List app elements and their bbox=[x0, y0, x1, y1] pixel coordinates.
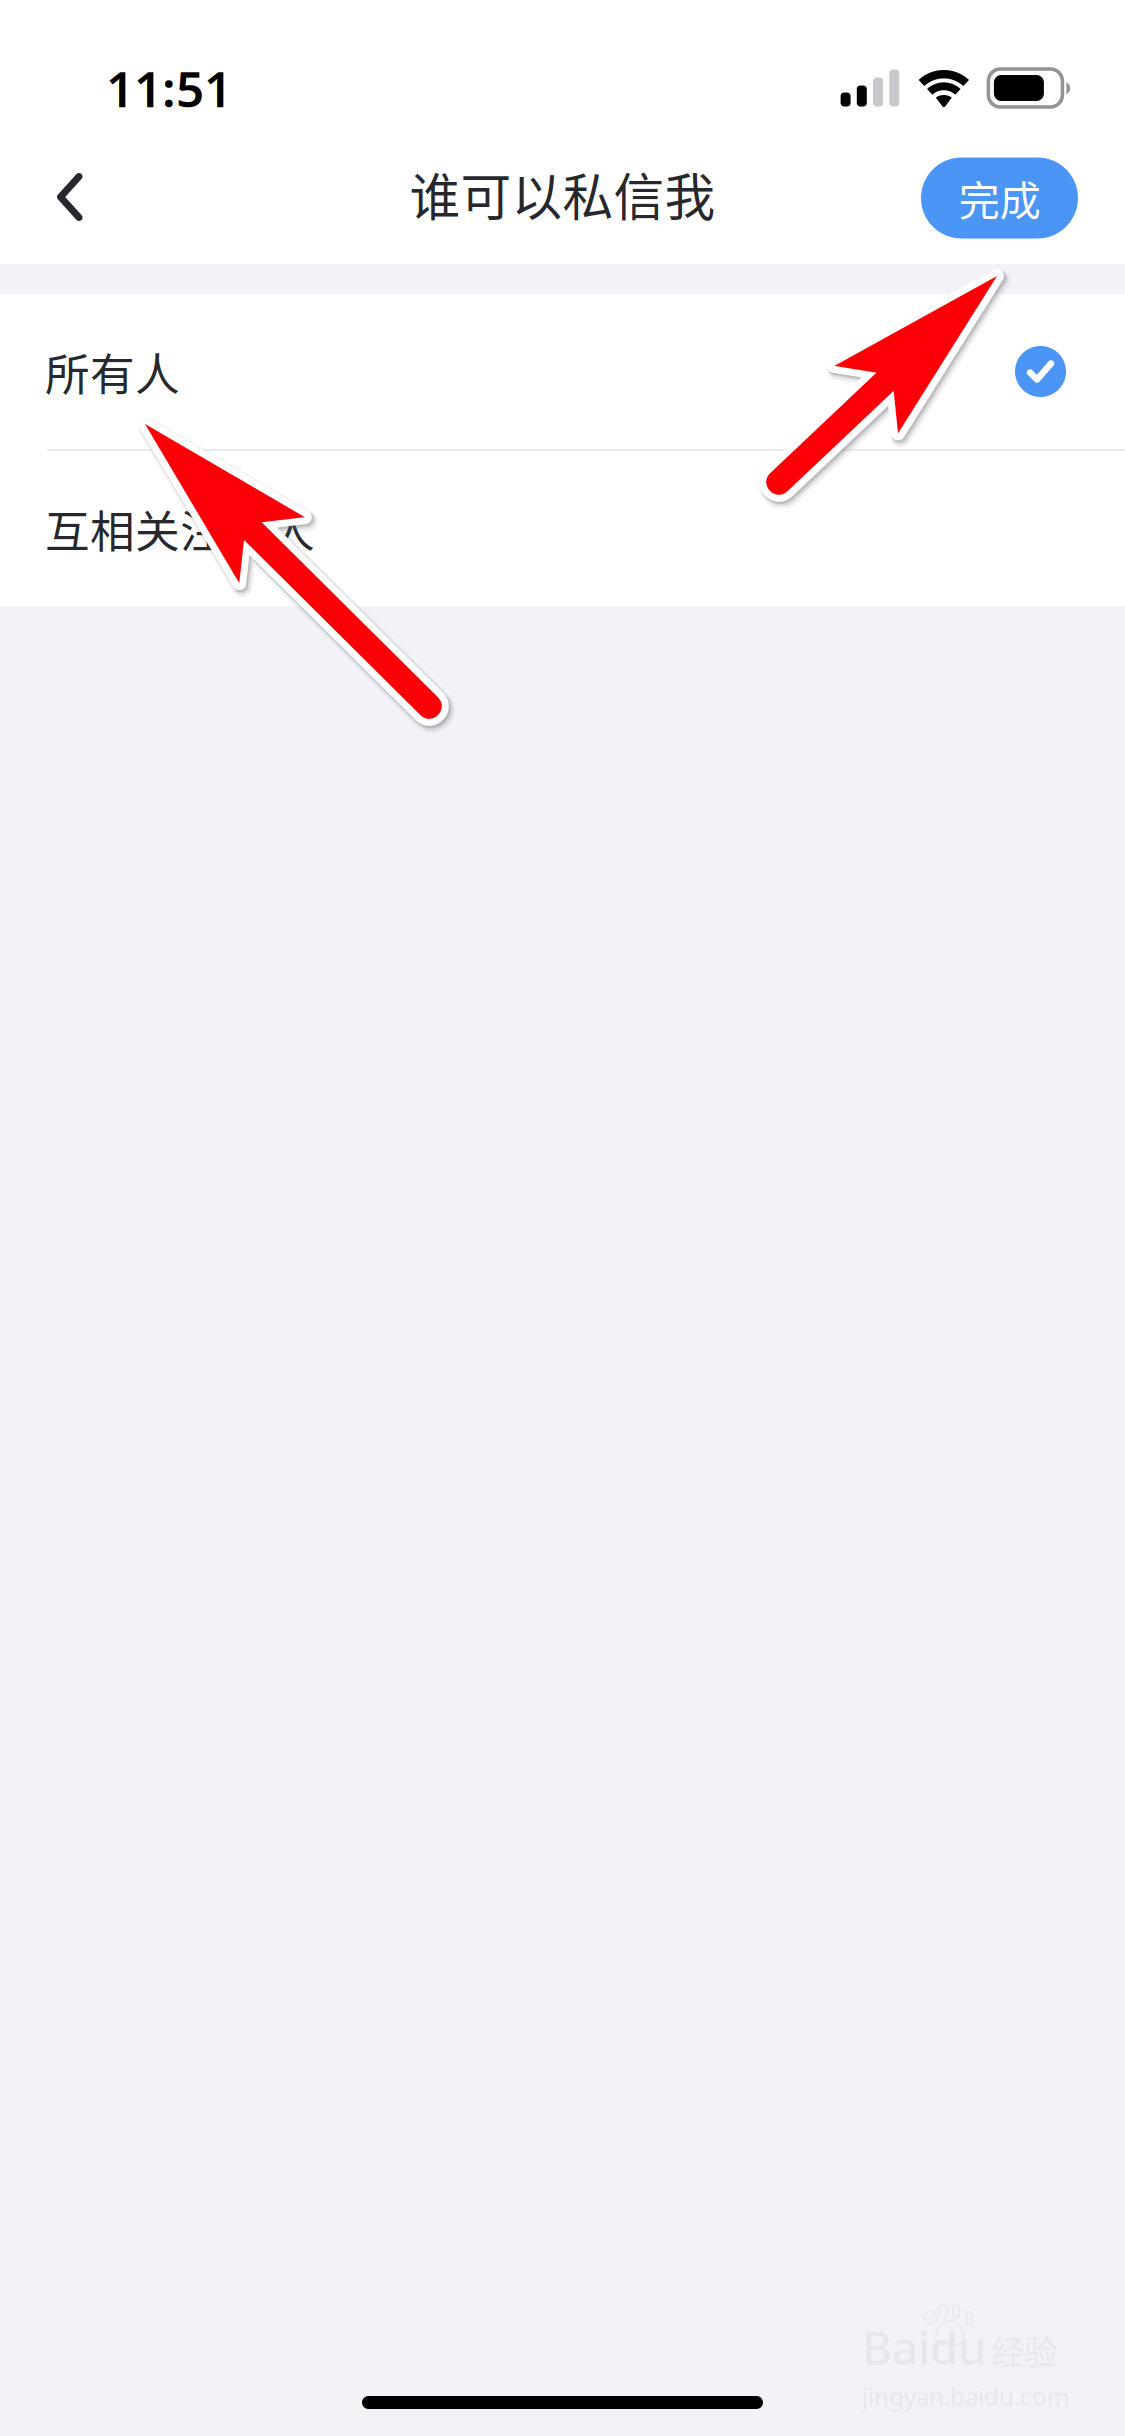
staticText: 经验 bbox=[991, 2326, 1057, 2374]
staticText: 所有人 bbox=[45, 339, 180, 404]
button[interactable]: Back bbox=[0, 142, 140, 264]
staticText: 谁可以私信我 bbox=[409, 157, 715, 231]
button[interactable]: 互相关注的人 bbox=[0, 451, 1125, 606]
staticText: 互相关注的人 bbox=[45, 496, 315, 561]
staticText: jingyan.baidu.com bbox=[862, 2380, 1069, 2412]
staticText: 完成 bbox=[958, 168, 1040, 228]
staticText: Baidu bbox=[862, 2317, 986, 2377]
staticText: 11:51 bbox=[106, 55, 232, 121]
button[interactable]: 所有人 bbox=[0, 294, 1125, 449]
button[interactable]: 完成 bbox=[921, 162, 1078, 243]
